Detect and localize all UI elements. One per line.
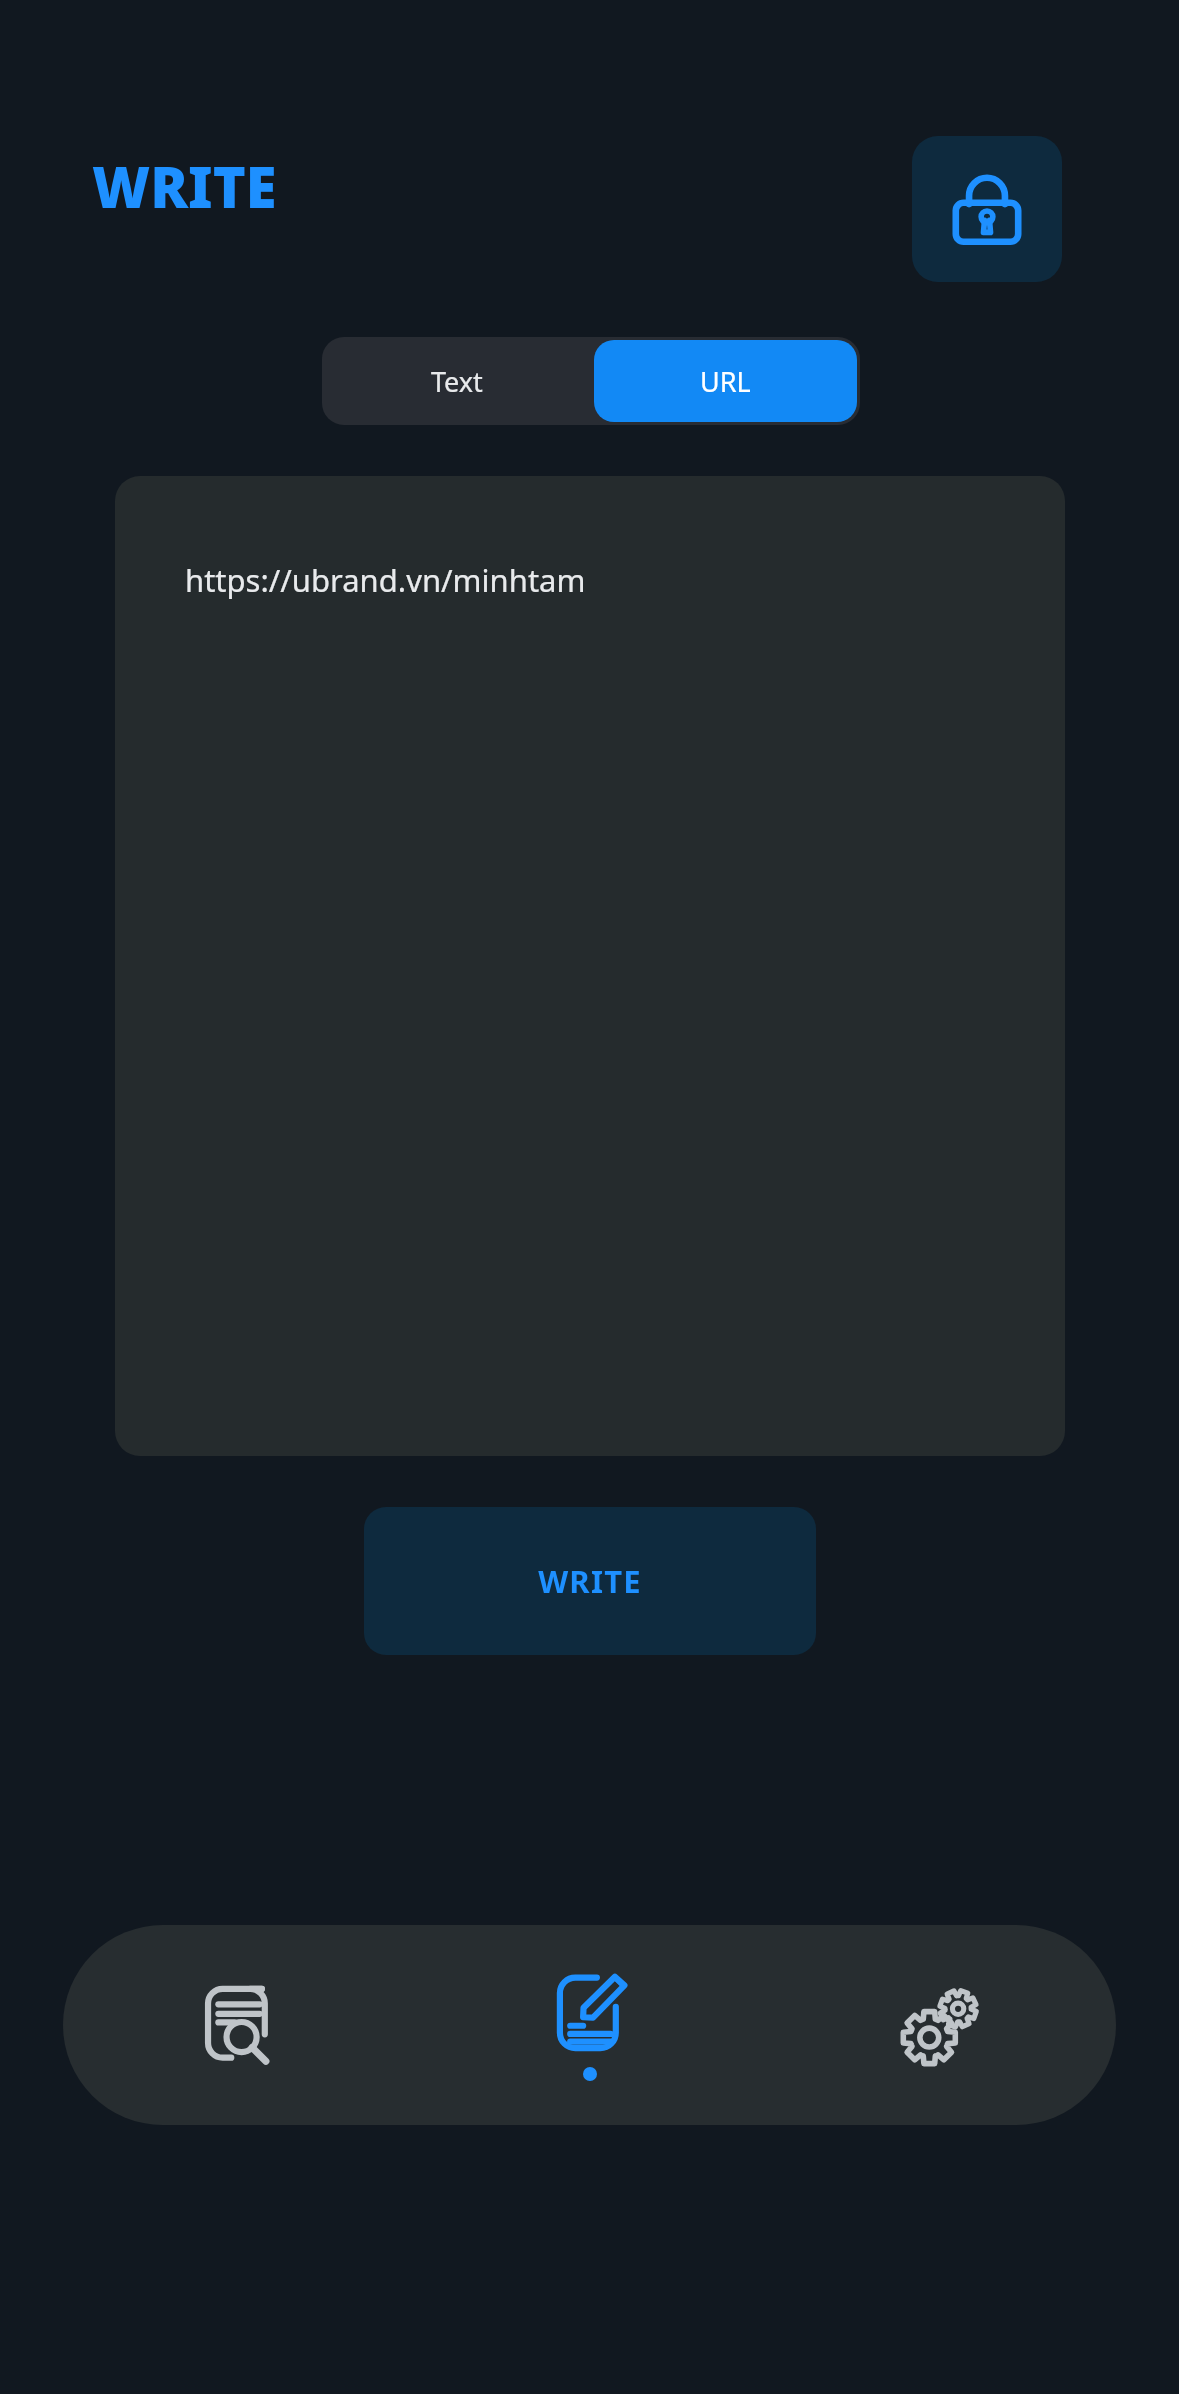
- button[interactable]: Settings: [765, 1925, 1116, 2125]
- button[interactable]: WRITE: [364, 1507, 816, 1655]
- staticText: https://ubrand.vn/minhtam: [185, 559, 586, 601]
- staticText: WRITE: [538, 1560, 642, 1602]
- button[interactable]: Lock: [912, 136, 1062, 282]
- staticText: URL: [700, 363, 751, 400]
- button[interactable]: Text: [322, 337, 591, 425]
- button[interactable]: Read: [63, 1925, 414, 2125]
- staticText: WRITE: [92, 148, 277, 224]
- button[interactable]: Write: [414, 1925, 765, 2125]
- button[interactable]: URL: [594, 340, 857, 422]
- staticText: Text: [431, 363, 483, 400]
- button[interactable]: https://ubrand.vn/minhtam: [115, 476, 1065, 1456]
